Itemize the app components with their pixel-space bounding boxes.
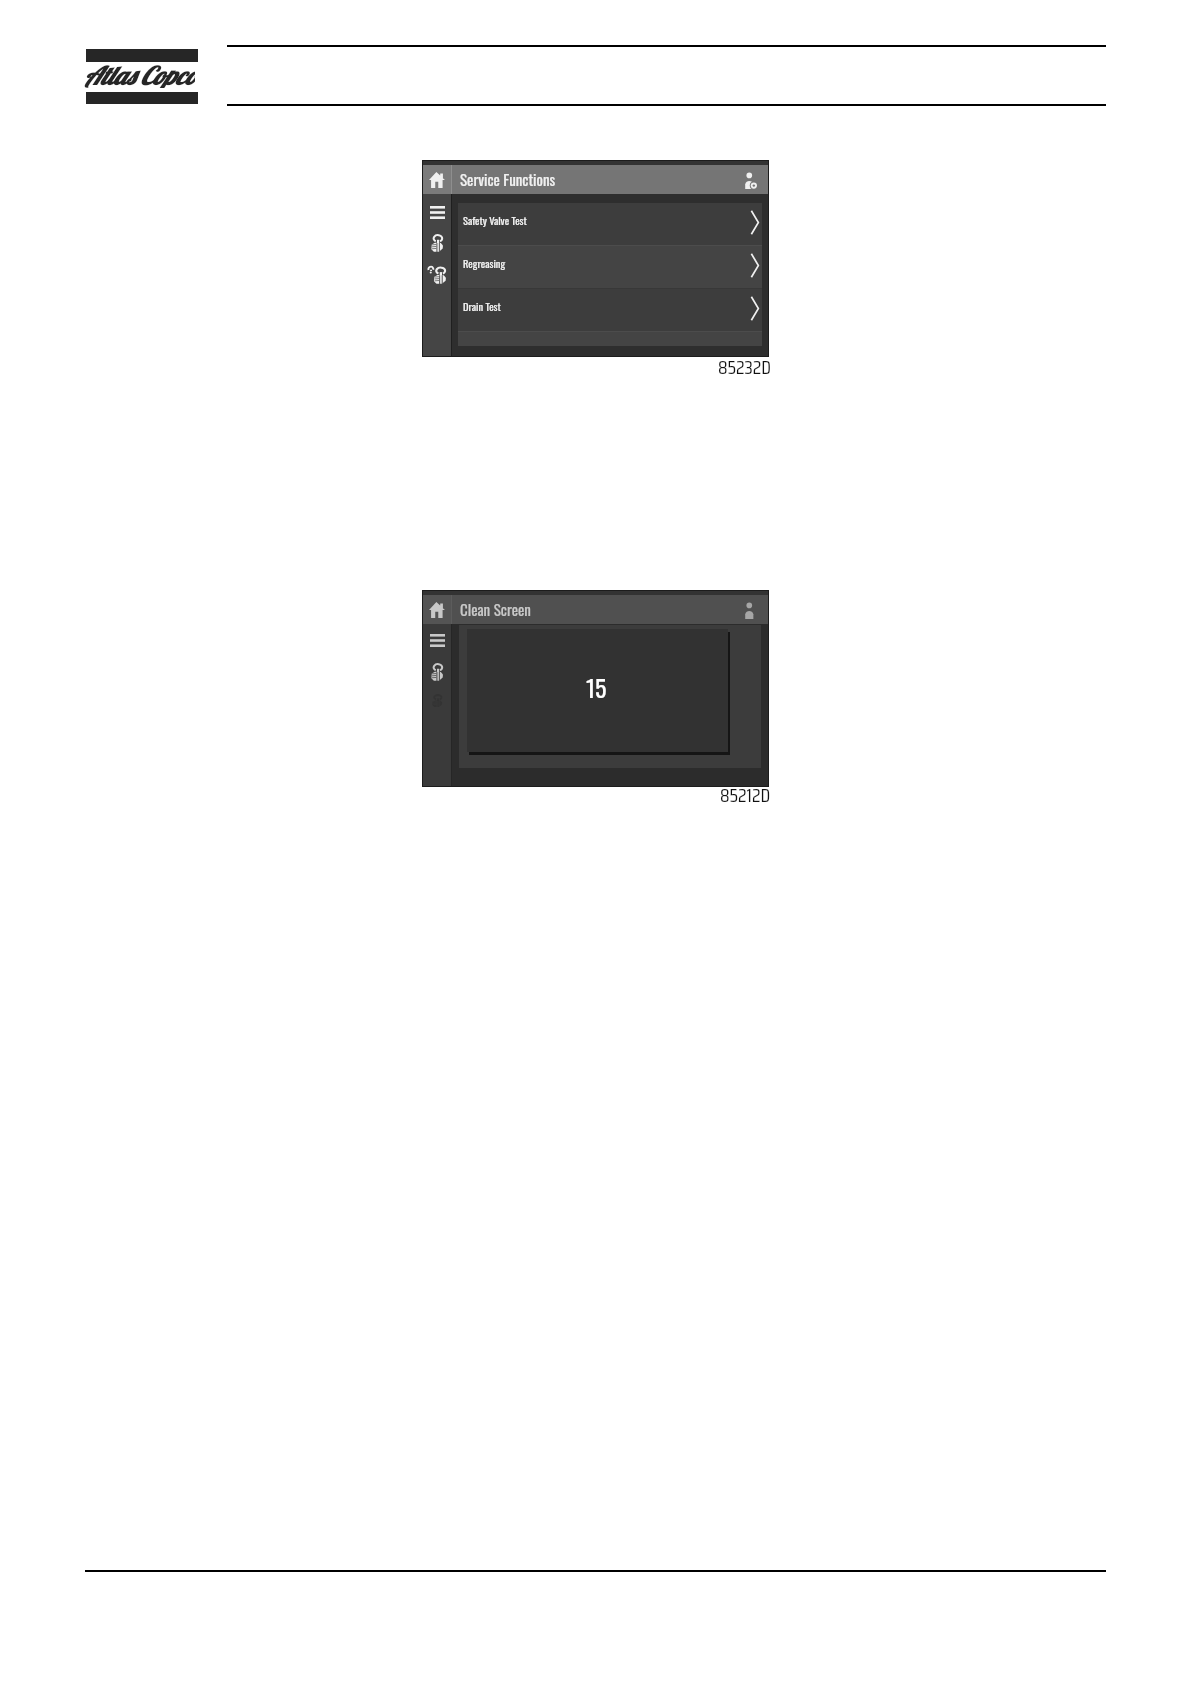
button[interactable]: Service [427, 233, 447, 253]
staticText: Service Functions [460, 168, 556, 190]
staticText: Clean Screen [460, 598, 531, 620]
staticText: Regreasing [463, 255, 506, 271]
staticText: Drain Test [463, 298, 501, 314]
staticText: 85232D [718, 352, 772, 383]
button[interactable]: Menu [427, 202, 447, 222]
button[interactable]: Safety Valve Test [458, 203, 762, 245]
staticText: Atlas Copco [83, 60, 195, 88]
button[interactable]: User account [739, 169, 761, 191]
button[interactable]: Drain Test [458, 289, 762, 331]
staticText: 15 [586, 669, 607, 705]
button[interactable]: Help [426, 263, 448, 285]
staticText: 85212D [720, 780, 771, 811]
button[interactable]: Menu [427, 630, 447, 650]
button[interactable]: User account [739, 599, 761, 621]
button[interactable]: Home [423, 595, 451, 624]
staticText: Safety Valve Test [463, 212, 527, 228]
button[interactable]: Home [423, 165, 451, 194]
button[interactable]: Service [427, 662, 447, 682]
button[interactable]: Regreasing [458, 246, 762, 288]
